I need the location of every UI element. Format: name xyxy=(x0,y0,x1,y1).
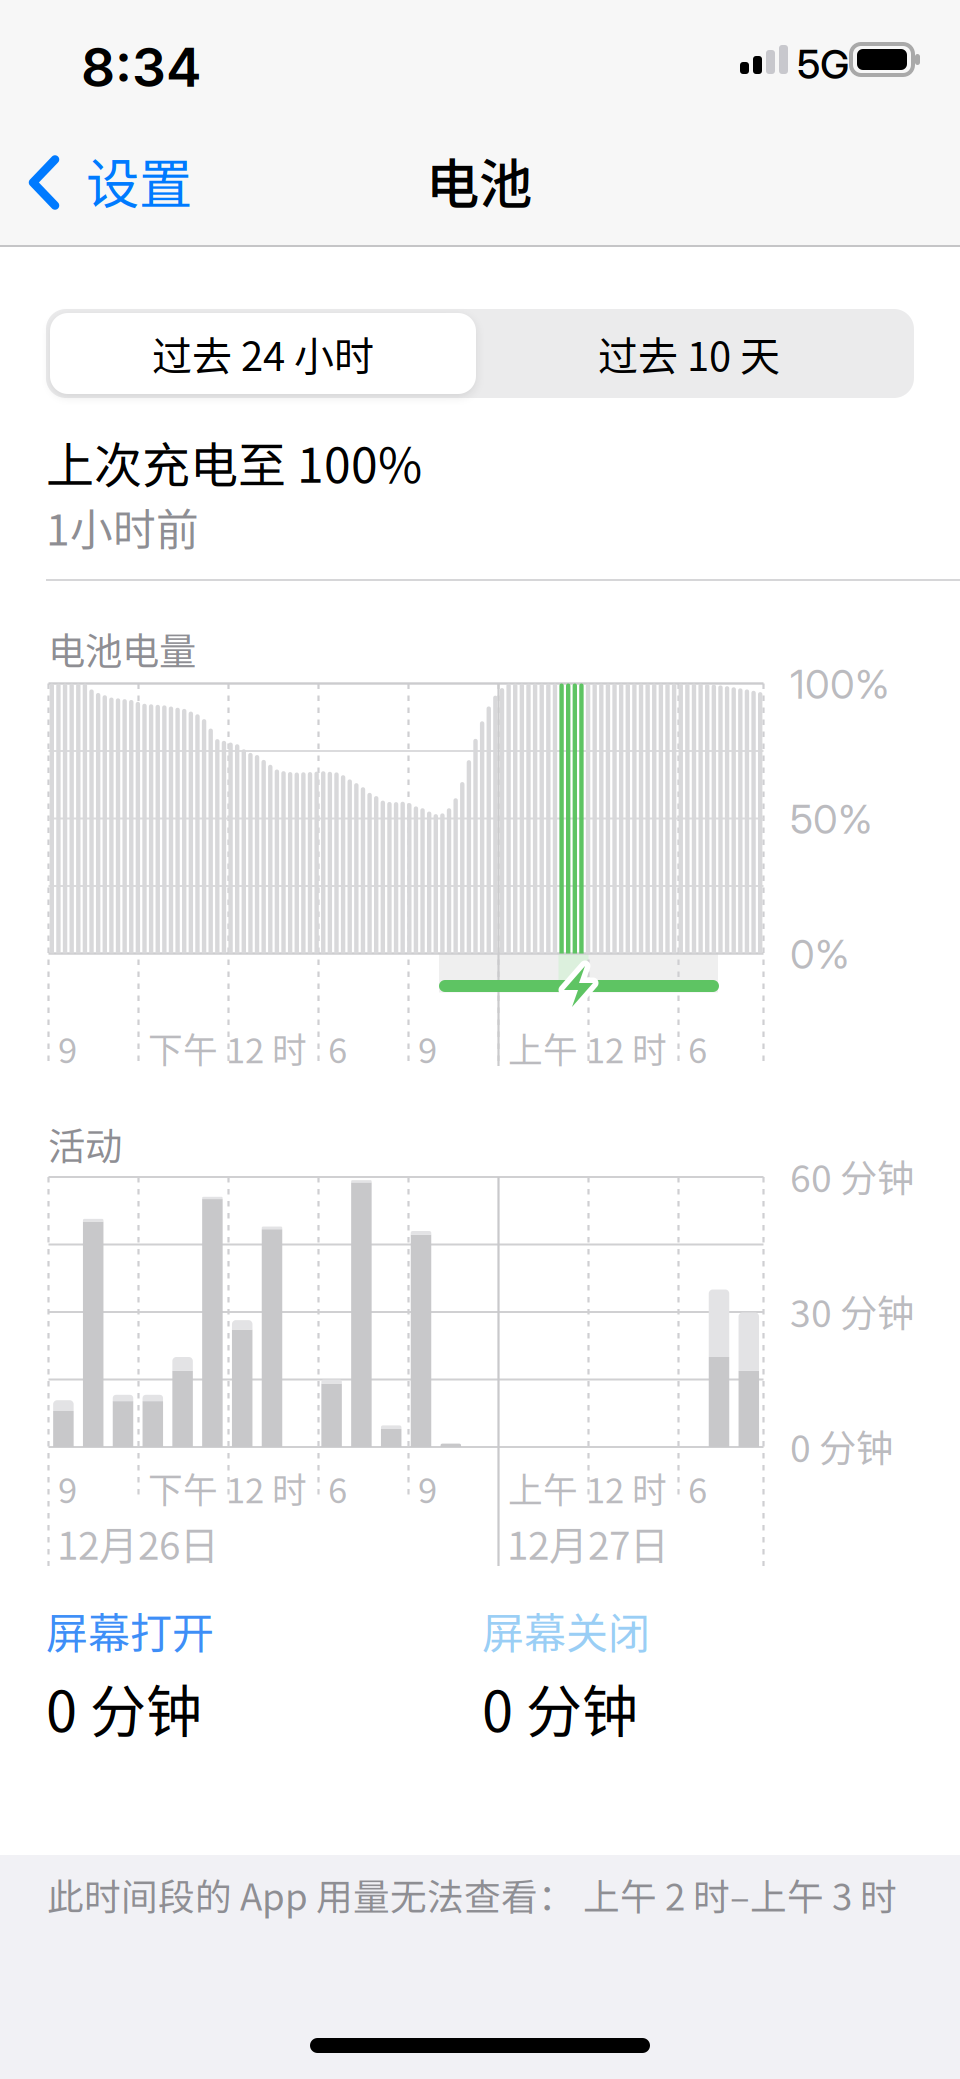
staticText: 9 xyxy=(418,1023,437,1073)
staticText: 此时间段的 App 用量无法查看： 上午 2 时–上午 3 时 xyxy=(47,1868,897,1921)
staticText: 6 xyxy=(328,1023,347,1073)
button[interactable]: 设置 xyxy=(0,120,300,246)
staticText: 30 分钟 xyxy=(790,1284,914,1338)
staticText: 上午 12 时 xyxy=(508,1023,667,1073)
button[interactable]: 屏幕关闭 xyxy=(482,1600,650,1748)
staticText: 9 xyxy=(418,1463,437,1513)
staticText: 100% xyxy=(790,660,889,708)
staticText: 1小时前 xyxy=(46,496,199,558)
staticText: 5G xyxy=(797,40,849,88)
staticText: 屏幕关闭 xyxy=(482,1600,650,1661)
staticText: 上午 12 时 xyxy=(508,1463,667,1513)
button[interactable]: 过去 24 小时 xyxy=(50,313,476,394)
staticText: 8:34 xyxy=(81,35,202,99)
staticText: 60 分钟 xyxy=(790,1149,914,1203)
staticText: 设置 xyxy=(86,142,192,219)
staticText: 过去 24 小时 xyxy=(152,324,374,382)
staticText: 0 分钟 xyxy=(482,1667,638,1748)
staticText: 下午 12 时 xyxy=(148,1463,307,1513)
staticText: 下午 12 时 xyxy=(148,1023,307,1073)
staticText: 过去 10 天 xyxy=(598,324,780,382)
staticText: 9 xyxy=(58,1463,77,1513)
staticText: 12月27日 xyxy=(507,1515,669,1571)
staticText: 0 分钟 xyxy=(790,1419,893,1473)
staticText: 6 xyxy=(328,1463,347,1513)
staticText: 屏幕打开 xyxy=(46,1600,214,1661)
staticText: 50% xyxy=(790,795,872,843)
button[interactable]: 屏幕打开 xyxy=(46,1600,214,1748)
staticText: 0% xyxy=(790,930,849,978)
button[interactable]: 过去 10 天 xyxy=(476,313,902,394)
staticText: 6 xyxy=(688,1463,707,1513)
staticText: 电池电量 xyxy=(48,622,196,676)
staticText: 0 分钟 xyxy=(46,1667,202,1748)
staticText: 6 xyxy=(688,1023,707,1073)
staticText: 12月26日 xyxy=(57,1515,219,1571)
staticText: 活动 xyxy=(48,1117,122,1171)
staticText: 电池 xyxy=(426,142,532,219)
staticText: 上次充电至 100% xyxy=(46,427,422,496)
staticText: 9 xyxy=(58,1023,77,1073)
